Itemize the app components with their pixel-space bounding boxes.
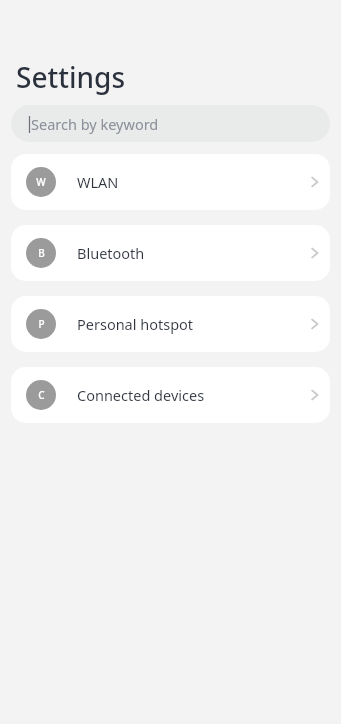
staticText: Bluetooth [77, 243, 145, 263]
button[interactable]: W [11, 154, 330, 210]
button[interactable]: C [11, 367, 330, 423]
other: Open Connected devices [300, 381, 328, 409]
button[interactable]: Search by keyword [11, 105, 330, 142]
other: Open WLAN [300, 168, 328, 196]
staticText: C [38, 388, 45, 402]
staticText: WLAN [77, 172, 119, 192]
other: Open Bluetooth [300, 239, 328, 267]
staticText: P [38, 317, 45, 331]
staticText: Search by keyword [31, 114, 159, 134]
button[interactable]: B [11, 225, 330, 281]
button[interactable]: P [11, 296, 330, 352]
staticText: B [38, 246, 45, 260]
staticText: Connected devices [77, 385, 205, 405]
staticText: Personal hotspot [77, 314, 194, 334]
other: Open Personal hotspot [300, 310, 328, 338]
staticText: Settings [16, 58, 126, 96]
staticText: W [36, 175, 46, 189]
